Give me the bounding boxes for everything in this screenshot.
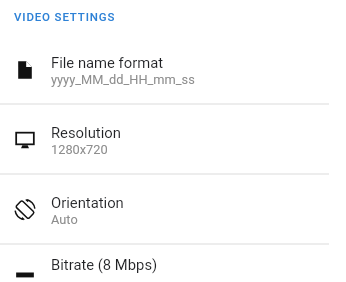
staticText: File name format (51, 54, 164, 71)
staticText: Orientation (51, 194, 124, 211)
button[interactable]: Orientation (0, 174, 346, 244)
other: Orientation (14, 199, 36, 221)
staticText: Auto (51, 212, 78, 227)
staticText: VIDEO SETTINGS (14, 10, 116, 23)
button[interactable]: Bitrate (0, 243, 346, 282)
button[interactable]: Resolution (0, 104, 346, 174)
other: Bitrate (14, 265, 36, 282)
staticText: 1280x720 (51, 142, 108, 157)
staticText: Bitrate (8 Mbps) (51, 256, 158, 273)
staticText: yyyy_MM_dd_HH_mm_ss (51, 72, 195, 87)
other: File name format (14, 59, 36, 81)
staticText: Resolution (51, 124, 121, 141)
other: Resolution (14, 129, 36, 151)
button[interactable]: File name format (0, 34, 346, 104)
